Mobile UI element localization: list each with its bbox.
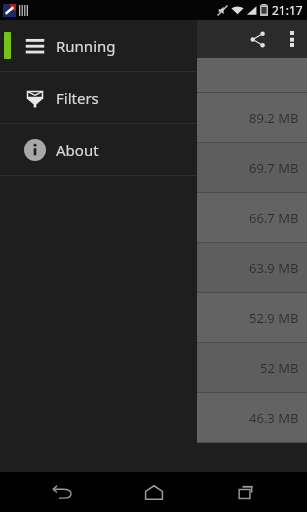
- button[interactable]: About: [0, 124, 197, 175]
- button[interactable]: Media storage service: [0, 193, 307, 242]
- staticText: Filters: [56, 88, 99, 108]
- button[interactable]: Running: [0, 20, 197, 71]
- staticText: 89.2 MB: [249, 109, 299, 127]
- button[interactable]: Gallery process: [0, 393, 307, 442]
- staticText: Gallery process: [8, 410, 249, 426]
- staticText: Google Play Services activity: [8, 110, 249, 126]
- button[interactable]: Recent apps: [214, 472, 278, 512]
- button[interactable]: Android System keyboard: [0, 143, 307, 192]
- button[interactable]: Back: [29, 472, 93, 512]
- staticText: Contacts provider: [8, 360, 260, 376]
- button[interactable]: Open navigation drawer: [0, 20, 11, 58]
- staticText: Download manager: [8, 260, 249, 276]
- button[interactable]: Contacts provider: [0, 343, 307, 392]
- staticText: KCleaner: [45, 28, 113, 50]
- staticText: About: [56, 140, 99, 160]
- button[interactable]: Filters: [0, 72, 197, 123]
- staticText: 21:17: [272, 2, 303, 18]
- staticText: Android System keyboard: [8, 160, 249, 176]
- button[interactable]: More options: [277, 20, 307, 58]
- staticText: 52 MB: [260, 359, 299, 377]
- button[interactable]: Home: [122, 472, 186, 512]
- button[interactable]: Share: [237, 20, 277, 58]
- staticText: 63.9 MB: [249, 259, 299, 277]
- button[interactable]: Download manager: [0, 243, 307, 292]
- staticText: 46.3 MB: [249, 409, 299, 427]
- staticText: Free memory: 311.4 MB: [8, 66, 171, 85]
- staticText: Media storage service: [8, 210, 249, 226]
- staticText: 52.9 MB: [249, 309, 299, 327]
- staticText: 69.7 MB: [249, 159, 299, 177]
- staticText: Running: [56, 36, 116, 56]
- button[interactable]: Calendar sync adapter: [0, 293, 307, 342]
- staticText: Calendar sync adapter: [8, 310, 249, 326]
- button[interactable]: Google Play Services activity: [0, 93, 307, 142]
- staticText: 66.7 MB: [249, 209, 299, 227]
